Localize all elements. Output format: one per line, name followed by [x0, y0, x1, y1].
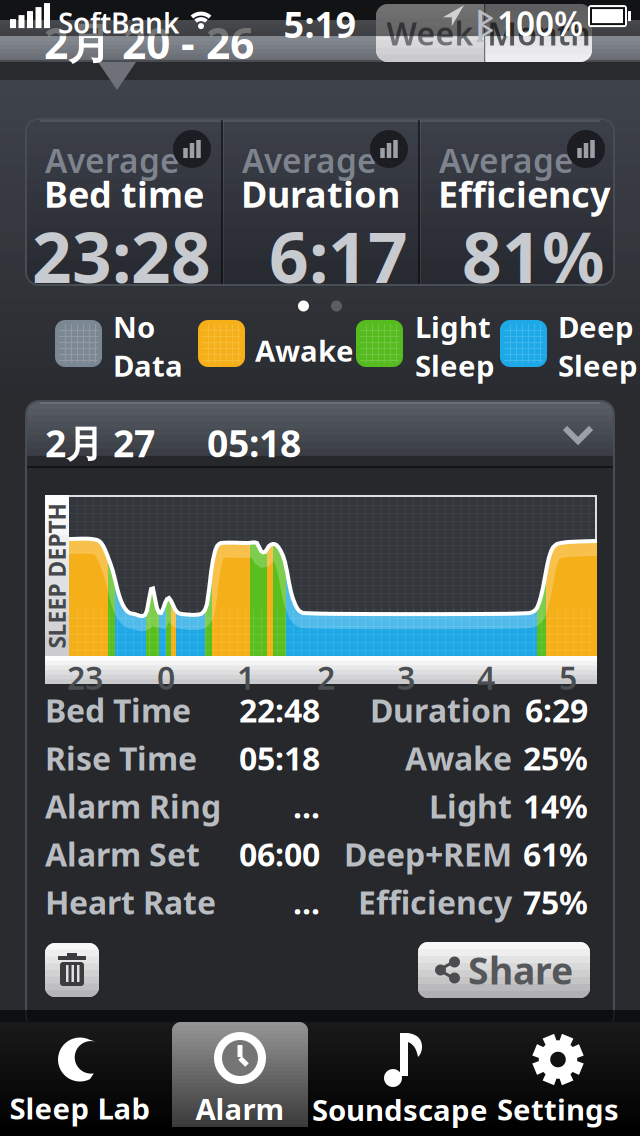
staticText: 0: [157, 656, 175, 698]
staticText: 5:19: [283, 0, 356, 48]
staticText: 05:18: [239, 737, 320, 779]
button[interactable]: Sleep Lab: [0, 1030, 165, 1134]
staticText: Light: [429, 785, 512, 827]
button[interactable]: Statistics chart: [173, 130, 211, 168]
staticText: Duration: [370, 689, 512, 731]
staticText: Average: [45, 138, 180, 182]
staticText: Deep+REM: [344, 833, 512, 875]
staticText: Alarm: [195, 1089, 284, 1128]
staticText: Awake: [255, 331, 354, 370]
button[interactable]: Collapse entry: [553, 416, 603, 453]
staticText: 06:00: [239, 833, 320, 875]
staticText: Heart Rate: [45, 881, 216, 923]
staticText: Efficiency: [358, 881, 512, 923]
staticText: Awake: [405, 737, 512, 779]
staticText: Sleep: [415, 346, 495, 385]
button[interactable]: Soundscape: [302, 1029, 498, 1133]
staticText: ...: [293, 785, 320, 827]
button[interactable]: Share: [418, 942, 590, 998]
staticText: Sleep Lab: [9, 1088, 150, 1127]
button[interactable]: Delete entry: [45, 943, 99, 997]
staticText: 05:18: [207, 418, 301, 468]
staticText: Average: [242, 138, 377, 182]
staticText: Alarm Set: [45, 833, 200, 875]
staticText: ᛒ: [475, 0, 492, 44]
staticText: 5: [559, 656, 577, 698]
staticText: Average: [439, 138, 574, 182]
staticText: 14%: [523, 785, 588, 827]
staticText: No: [113, 307, 155, 346]
staticText: 3: [397, 656, 415, 698]
staticText: Efficiency: [438, 170, 611, 218]
staticText: 2月 27: [45, 418, 155, 468]
staticText: 6:17: [269, 210, 408, 302]
staticText: Alarm Ring: [45, 785, 221, 827]
staticText: Light: [415, 307, 491, 346]
staticText: Share: [468, 945, 573, 995]
staticText: SLEEP DEPTH: [0, 561, 129, 591]
button[interactable]: Month: [485, 4, 592, 62]
staticText: 1: [237, 656, 255, 698]
staticText: 2: [317, 656, 335, 698]
staticText: Rise Time: [45, 737, 197, 779]
button[interactable]: Alarm: [172, 1028, 308, 1132]
staticText: Settings: [497, 1089, 619, 1128]
button[interactable]: Week: [376, 4, 484, 62]
staticText: Deep: [558, 307, 634, 346]
staticText: Week: [386, 12, 473, 54]
staticText: Month: [487, 12, 590, 54]
staticText: 2月 20 - 26: [44, 14, 254, 71]
staticText: 61%: [523, 833, 588, 875]
staticText: 75%: [523, 881, 588, 923]
staticText: 81%: [462, 210, 605, 302]
staticText: 100%: [497, 1, 583, 45]
staticText: Soundscape: [312, 1090, 488, 1129]
staticText: Bed Time: [45, 689, 191, 731]
button[interactable]: Statistics chart: [567, 130, 605, 168]
staticText: 25%: [523, 737, 588, 779]
staticText: 22:48: [239, 689, 320, 731]
staticText: Sleep: [558, 346, 638, 385]
staticText: 6:29: [525, 689, 588, 731]
staticText: ...: [293, 881, 320, 923]
staticText: 23:28: [32, 210, 211, 302]
staticText: 23: [67, 656, 103, 698]
staticText: Duration: [241, 170, 400, 218]
staticText: 4: [477, 656, 495, 698]
staticText: SoftBank: [58, 4, 179, 41]
staticText: Bed time: [44, 170, 204, 218]
button[interactable]: Settings: [478, 1029, 638, 1133]
button[interactable]: Statistics chart: [370, 130, 408, 168]
staticText: Data: [113, 346, 183, 385]
